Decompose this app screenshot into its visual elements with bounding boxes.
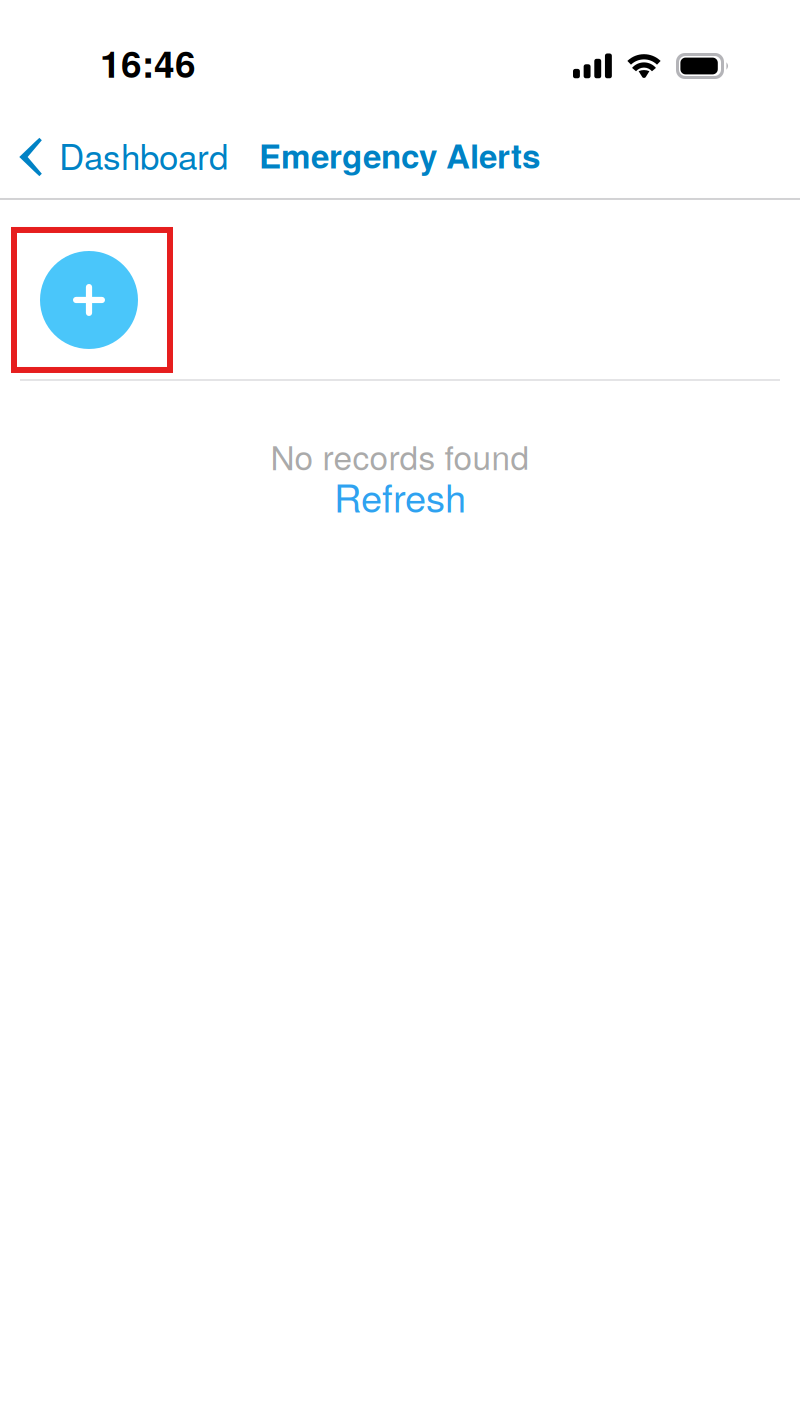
- staticText: Refresh: [334, 469, 466, 523]
- button[interactable]: Refresh: [334, 480, 466, 523]
- staticText: No records found: [270, 432, 529, 480]
- button[interactable]: Add emergency alert: [14, 230, 170, 370]
- button[interactable]: Dashboard: [0, 121, 248, 189]
- staticText: 16:46: [100, 36, 196, 89]
- staticText: Emergency Alerts: [259, 131, 540, 179]
- staticText: Dashboard: [59, 130, 228, 180]
- button[interactable]: Emergency Alerts: [248, 121, 551, 189]
